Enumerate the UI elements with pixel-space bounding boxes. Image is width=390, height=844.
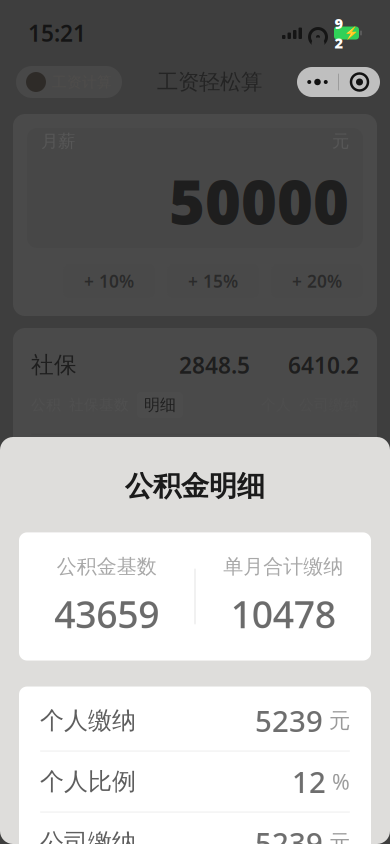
- staticText: 5239: [255, 823, 323, 844]
- staticText: 92: [334, 13, 343, 52]
- staticText: 5239: [213, 455, 265, 485]
- staticText: 10478: [231, 589, 336, 639]
- staticText: 43659: [54, 589, 159, 639]
- button[interactable]: + 20%: [271, 264, 363, 298]
- button[interactable]: 工资计算: [16, 66, 122, 98]
- staticText: 公司缴纳: [40, 828, 136, 844]
- staticText: 月薪: [41, 131, 75, 152]
- staticText: 50000: [169, 160, 349, 241]
- staticText: 单月合计缴纳: [223, 554, 343, 579]
- staticText: 元: [329, 829, 350, 844]
- staticText: + 10%: [84, 269, 134, 292]
- staticText: 个人缴纳: [40, 706, 136, 735]
- button[interactable]: + 10%: [63, 264, 155, 298]
- staticText: 15:21: [28, 18, 86, 48]
- staticText: 5239: [255, 701, 323, 740]
- button[interactable]: More options and close: [297, 67, 380, 97]
- staticText: %: [332, 767, 350, 796]
- button[interactable]: + 15%: [167, 264, 259, 298]
- staticText: 元: [332, 131, 349, 152]
- staticText: 社保: [31, 351, 77, 379]
- staticText: 工资轻松算: [157, 69, 262, 95]
- staticText: 6410.2: [288, 350, 359, 380]
- staticText: + 20%: [292, 269, 342, 292]
- staticText: 元: [329, 707, 350, 734]
- staticText: 公积金基数: [57, 554, 157, 579]
- staticText: 明细: [144, 395, 176, 415]
- staticText: 2848.5: [179, 350, 250, 380]
- staticText: 12: [292, 762, 326, 801]
- staticText: 个人比例: [40, 767, 136, 796]
- staticText: ⚡: [343, 26, 358, 40]
- staticText: 公积金明细: [125, 469, 265, 503]
- staticText: + 15%: [188, 269, 238, 292]
